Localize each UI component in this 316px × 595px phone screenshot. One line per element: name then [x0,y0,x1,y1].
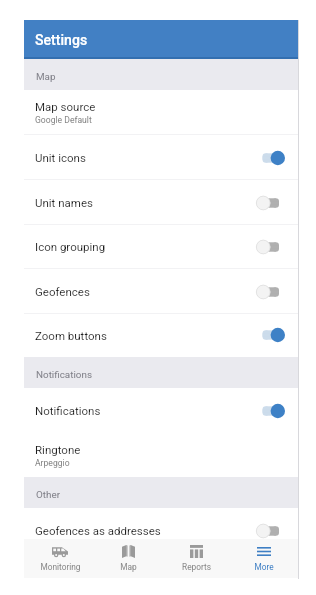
staticText: Notifications [36,369,92,381]
button[interactable]: More [230,539,298,578]
button[interactable]: Ringtone [24,433,298,478]
staticText: Map [36,71,56,83]
button[interactable]: Geofences as addresses [24,508,298,553]
staticText: Reports [182,562,211,572]
button[interactable]: Icon grouping [24,224,298,269]
button[interactable]: Map [94,539,162,578]
staticText: Unit icons [35,151,256,164]
staticText: Google Default [35,115,92,125]
staticText: Ringtone [35,443,81,456]
button[interactable]: Map source [24,90,298,135]
staticText: Geofences [35,285,256,298]
staticText: Settings [35,32,88,49]
staticText: Zoom buttons [35,329,256,342]
staticText: Monitoring [40,562,81,572]
button[interactable]: Unit names [24,180,298,225]
staticText: Unit names [35,196,256,209]
staticText: Icon grouping [35,240,256,253]
staticText: More [254,562,274,572]
staticText: Geofences as addresses [35,524,256,537]
staticText: Arpeggio [35,458,70,468]
button[interactable]: Notifications [24,388,298,433]
staticText: Other [36,489,60,501]
staticText: Map [120,562,137,572]
button[interactable]: Geofences [24,269,298,314]
button[interactable]: Unit icons [24,135,298,180]
staticText: Notifications [35,404,256,417]
button[interactable]: Zoom buttons [24,313,298,357]
button[interactable]: Reports [162,539,230,578]
button[interactable]: Monitoring [26,539,94,578]
staticText: Map source [35,100,96,113]
